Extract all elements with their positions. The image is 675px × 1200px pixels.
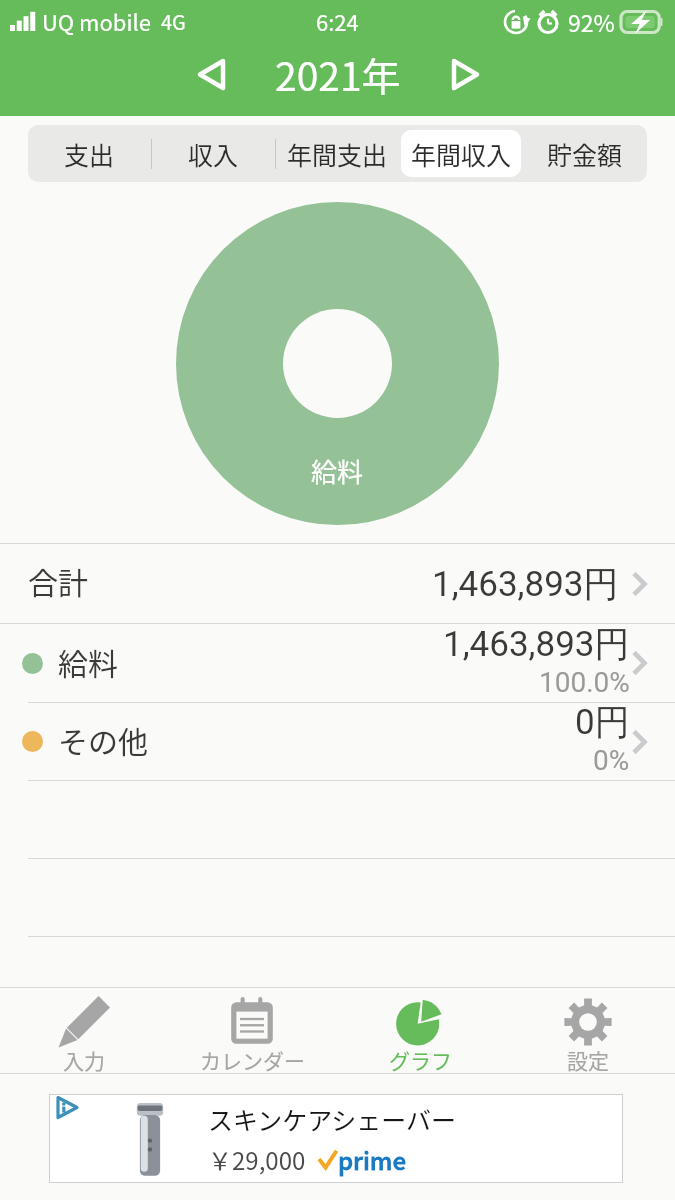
staticText: prime <box>338 1142 407 1177</box>
staticText: 合計 <box>28 559 88 602</box>
staticText: 支出 <box>64 136 115 172</box>
staticText: 0円 <box>575 700 630 744</box>
staticText: UQ mobile <box>42 5 151 37</box>
button[interactable]: 収入 <box>151 125 275 182</box>
staticText: グラフ <box>389 1045 452 1075</box>
staticText: 4G <box>161 7 186 36</box>
staticText: 給料 <box>58 640 118 683</box>
button[interactable]: スキンケアシェーバー <box>50 1095 622 1182</box>
button[interactable]: Next year <box>431 40 499 108</box>
staticText: 貯金額 <box>547 136 623 172</box>
staticText: ￥29,000 <box>208 1142 306 1177</box>
staticText: 収入 <box>188 136 239 172</box>
staticText: スキンケアシェーバー <box>208 1101 457 1137</box>
staticText: 設定 <box>567 1045 609 1075</box>
staticText: 年間収入 <box>411 136 512 172</box>
button[interactable]: 合計 <box>0 544 675 623</box>
staticText: 年間支出 <box>287 136 388 172</box>
button[interactable]: 貯金額 <box>523 125 647 182</box>
button[interactable]: 年間支出 <box>275 125 399 182</box>
staticText: カレンダー <box>200 1045 305 1075</box>
staticText: 0% <box>593 744 630 777</box>
staticText: 1,463,893円 <box>443 622 630 666</box>
button[interactable]: グラフ <box>336 988 504 1073</box>
button[interactable]: 2021年 <box>275 46 401 102</box>
staticText: その他 <box>58 718 148 761</box>
staticText: 1,463,893円 <box>432 562 619 606</box>
button[interactable]: 給料 <box>0 624 675 702</box>
staticText: 給料 <box>311 452 364 490</box>
button[interactable]: その他 <box>0 703 675 780</box>
button[interactable]: 設定 <box>504 988 672 1073</box>
button[interactable]: カレンダー <box>168 988 336 1073</box>
button[interactable]: 年間収入 <box>401 130 521 177</box>
button[interactable]: 支出 <box>28 125 151 182</box>
staticText: 入力 <box>63 1045 105 1075</box>
staticText: 6:24 <box>316 5 359 37</box>
button[interactable]: Previous year <box>177 40 245 108</box>
staticText: 92% <box>568 5 615 38</box>
button[interactable]: 入力 <box>0 988 168 1073</box>
staticText: 100.0% <box>539 666 630 699</box>
